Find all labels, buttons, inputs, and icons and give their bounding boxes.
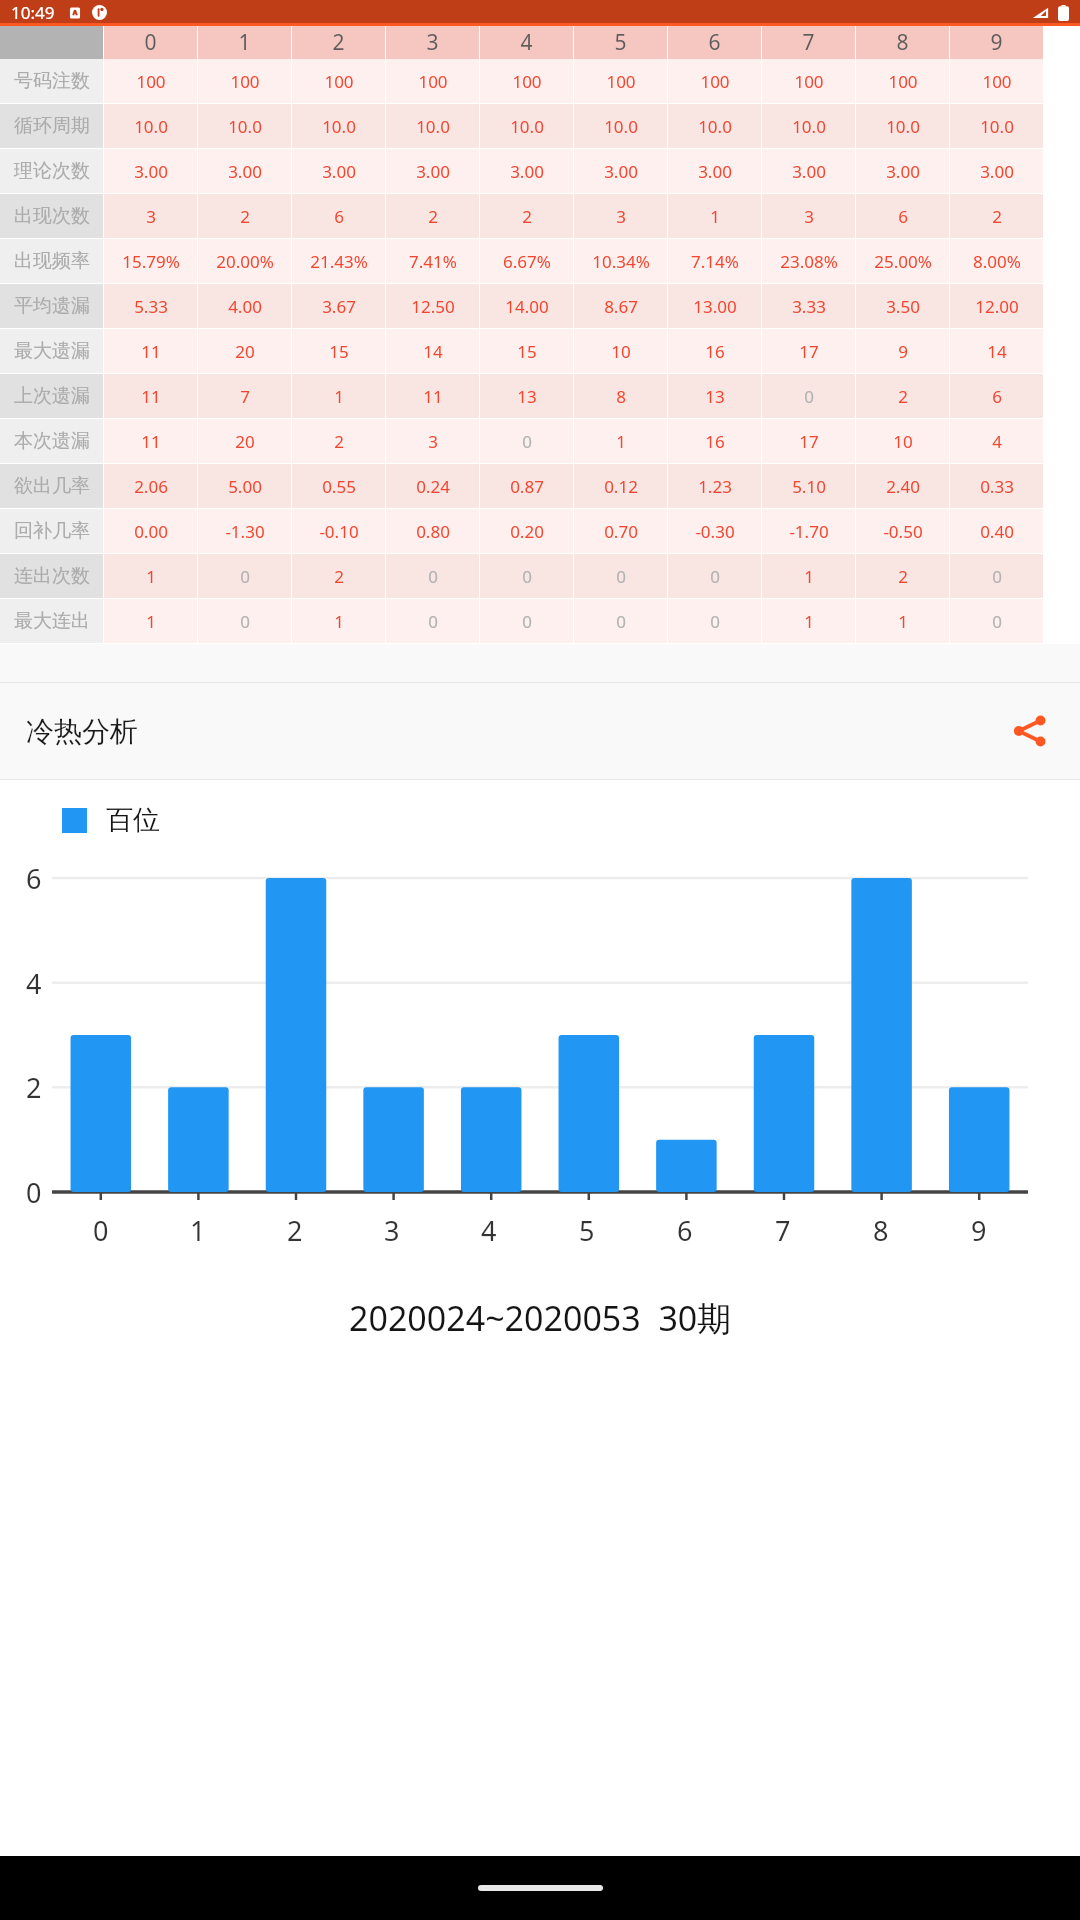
- staticText: 出现次数: [14, 204, 90, 228]
- staticText: 平均遗漏: [14, 294, 90, 318]
- staticText: 3.00: [886, 160, 920, 183]
- staticText: 3.67: [322, 295, 356, 318]
- staticText: -0.30: [695, 520, 735, 543]
- staticText: 3: [384, 1212, 400, 1249]
- staticText: 10: [893, 430, 913, 453]
- staticText: 14.00: [505, 295, 549, 318]
- staticText: 0.20: [510, 520, 544, 543]
- staticText: 3: [428, 430, 438, 453]
- staticText: -1.30: [225, 520, 265, 543]
- staticText: 0: [93, 1212, 109, 1249]
- staticText: 2.06: [134, 475, 168, 498]
- staticText: -1.70: [789, 520, 829, 543]
- staticText: 11: [141, 385, 161, 408]
- staticText: 100: [230, 70, 260, 93]
- staticText: 6: [992, 385, 1002, 408]
- staticText: 4: [992, 430, 1002, 453]
- staticText: 20: [235, 340, 255, 363]
- staticText: 理论次数: [14, 159, 90, 183]
- staticText: 1: [334, 385, 344, 408]
- staticText: 3.00: [510, 160, 544, 183]
- staticText: 0.55: [322, 475, 356, 498]
- staticText: 21.43%: [310, 250, 368, 273]
- staticText: 2: [898, 385, 908, 408]
- staticText: 6.67%: [503, 250, 551, 273]
- staticText: 7: [775, 1212, 791, 1249]
- staticText: 2: [240, 205, 250, 228]
- staticText: 1: [190, 1212, 206, 1249]
- staticText: 10.0: [322, 115, 356, 138]
- staticText: 100: [982, 70, 1012, 93]
- staticText: 3: [616, 205, 626, 228]
- staticText: 0: [522, 565, 532, 588]
- staticText: 最大遗漏: [14, 339, 90, 363]
- staticText: 3.00: [792, 160, 826, 183]
- staticText: 0: [992, 565, 1002, 588]
- staticText: 3.00: [604, 160, 638, 183]
- staticText: 100: [136, 70, 166, 93]
- staticText: 23.08%: [780, 250, 838, 273]
- button[interactable]: Share: [1000, 701, 1060, 761]
- staticText: 8.00%: [973, 250, 1021, 273]
- staticText: 9: [898, 340, 908, 363]
- staticText: 0: [428, 610, 438, 633]
- staticText: 最大连出: [14, 609, 90, 633]
- staticText: 100: [794, 70, 824, 93]
- staticText: 16: [705, 340, 725, 363]
- staticText: 8.67: [604, 295, 638, 318]
- staticText: 100: [700, 70, 730, 93]
- staticText: 11: [141, 340, 161, 363]
- staticText: 20.00%: [216, 250, 274, 273]
- staticText: 14: [423, 340, 443, 363]
- staticText: 本次遗漏: [14, 429, 90, 453]
- staticText: 100: [418, 70, 448, 93]
- staticText: 13: [705, 385, 725, 408]
- staticText: 2: [428, 205, 438, 228]
- staticText: 号码注数: [14, 69, 90, 93]
- staticText: 10: [611, 340, 631, 363]
- staticText: 6: [677, 1212, 693, 1249]
- staticText: 10:49: [11, 1, 55, 24]
- staticText: 1: [334, 610, 344, 633]
- staticText: 2.40: [886, 475, 920, 498]
- staticText: 2: [287, 1212, 303, 1249]
- staticText: 2: [332, 28, 345, 57]
- staticText: 8: [896, 28, 909, 57]
- staticText: 11: [423, 385, 443, 408]
- staticText: 2020024~2020053 30期: [349, 1295, 732, 1341]
- staticText: 7: [802, 28, 815, 57]
- staticText: 0.12: [604, 475, 638, 498]
- staticText: 6: [334, 205, 344, 228]
- staticText: 12.50: [411, 295, 455, 318]
- staticText: 2: [334, 430, 344, 453]
- staticText: 2: [26, 1069, 42, 1105]
- staticText: 2: [992, 205, 1002, 228]
- staticText: 0.80: [416, 520, 450, 543]
- staticText: -0.10: [319, 520, 359, 543]
- staticText: 4.00: [228, 295, 262, 318]
- staticText: 100: [888, 70, 918, 93]
- staticText: 5: [614, 28, 627, 57]
- staticText: 8: [873, 1212, 889, 1249]
- staticText: 2: [334, 565, 344, 588]
- staticText: 0: [240, 565, 250, 588]
- staticText: 3: [804, 205, 814, 228]
- staticText: 15.79%: [122, 250, 180, 273]
- staticText: 7: [240, 385, 250, 408]
- staticText: 3.00: [416, 160, 450, 183]
- staticText: 7.14%: [691, 250, 739, 273]
- staticText: 0: [144, 28, 157, 57]
- staticText: 100: [512, 70, 542, 93]
- staticText: 10.0: [792, 115, 826, 138]
- staticText: 9: [971, 1212, 987, 1249]
- staticText: 0: [616, 610, 626, 633]
- staticText: 15: [517, 340, 537, 363]
- staticText: 0.00: [134, 520, 168, 543]
- staticText: 4: [481, 1212, 497, 1249]
- staticText: 0: [616, 565, 626, 588]
- staticText: 5.10: [792, 475, 826, 498]
- staticText: 1.23: [698, 475, 732, 498]
- staticText: -0.50: [883, 520, 923, 543]
- staticText: 1: [804, 610, 814, 633]
- staticText: 10.0: [510, 115, 544, 138]
